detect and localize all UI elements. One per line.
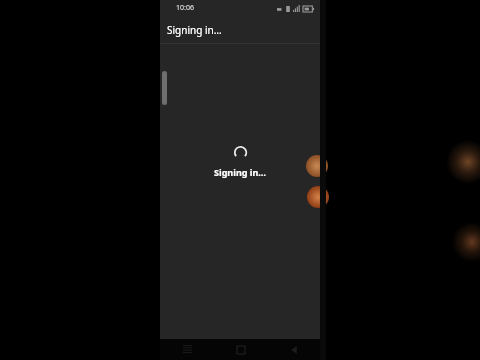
staticText: 10:06 [176,3,194,13]
button[interactable]: Recents [160,339,214,360]
staticText: Signing in… [167,23,222,37]
button[interactable]: Home [214,339,267,360]
staticText: Signing in… [214,166,266,178]
button[interactable]: Signing in… [160,16,320,43]
